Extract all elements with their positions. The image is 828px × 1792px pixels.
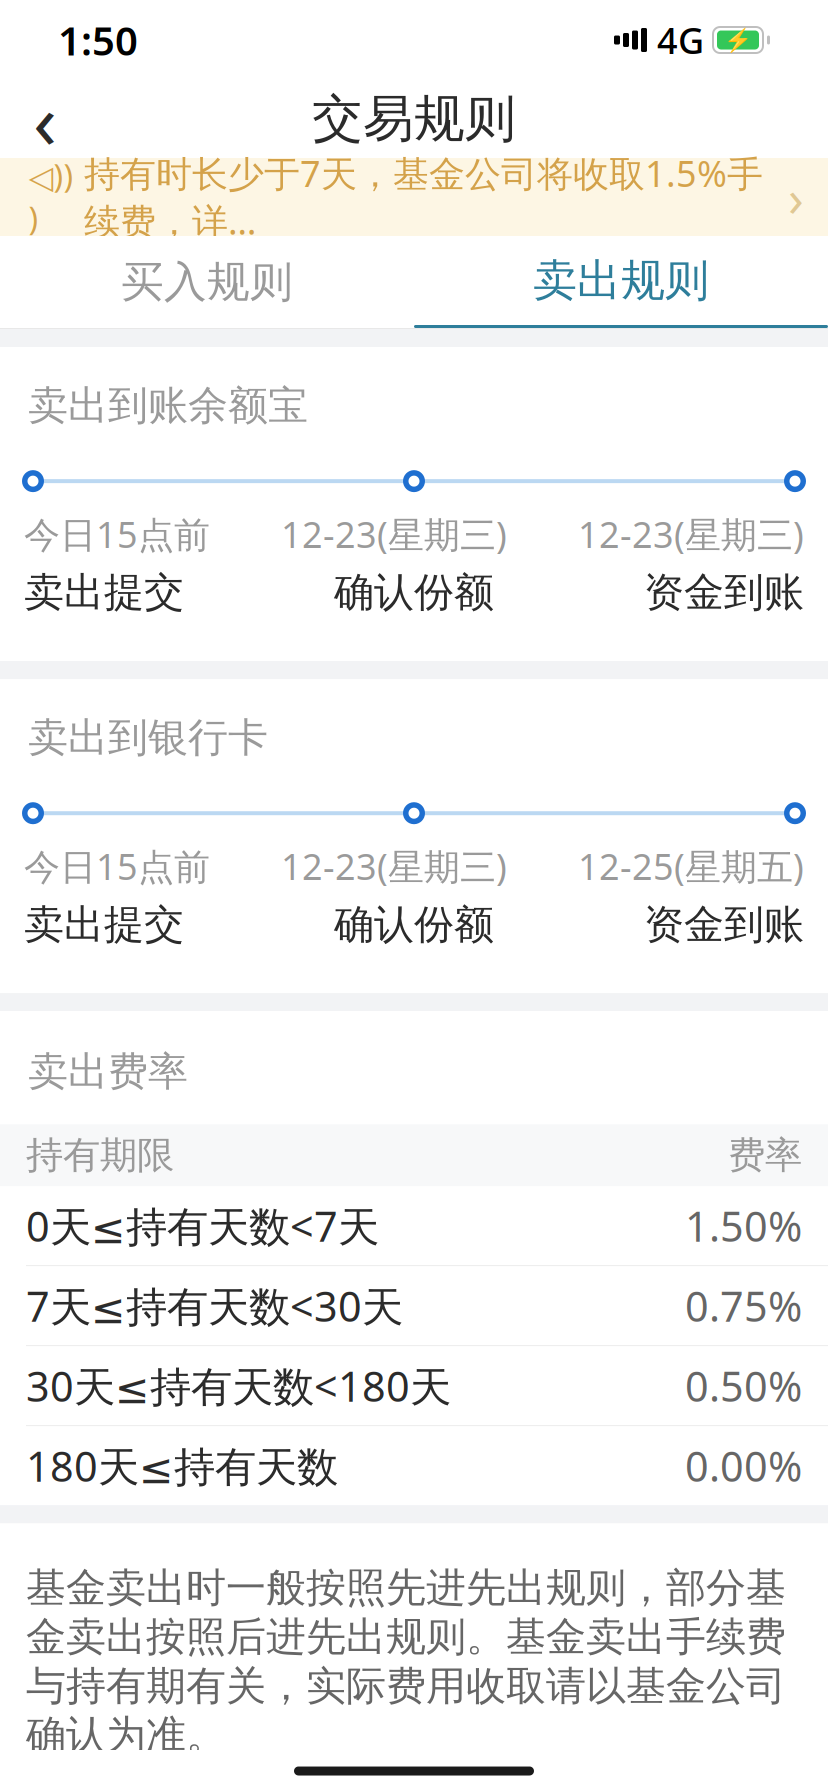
staticText: 30天≤持有天数<180天: [26, 1358, 451, 1413]
staticText: 0.75%: [685, 1278, 802, 1333]
staticText: 持有时长少于7天，基金公司将收取1.5%手续费，详…: [84, 149, 763, 245]
staticText: 卖出提交: [24, 568, 184, 617]
staticText: 今日15点前: [24, 510, 210, 558]
staticText: 0天≤持有天数<7天: [26, 1198, 379, 1253]
staticText: 持有期限: [26, 1132, 174, 1178]
staticText: 7天≤持有天数<30天: [26, 1278, 403, 1333]
staticText: 今日15点前: [24, 842, 210, 890]
staticText: 卖出到银行卡: [28, 713, 268, 762]
staticText: ‹: [33, 68, 57, 170]
staticText: 12-23(星期三): [281, 842, 507, 890]
staticText: ⚡: [724, 27, 752, 53]
staticText: 买入规则: [121, 256, 293, 308]
button[interactable]: 买入规则: [0, 236, 414, 328]
button[interactable]: Back: [0, 82, 90, 156]
staticText: 卖出到账余额宝: [28, 381, 308, 430]
button[interactable]: 卖出规则: [414, 236, 828, 328]
staticText: 资金到账: [644, 900, 804, 949]
staticText: 卖出费率: [28, 1047, 188, 1096]
staticText: 交易规则: [312, 88, 516, 150]
staticText: 确认份额: [334, 900, 494, 949]
staticText: 资金到账: [644, 568, 804, 617]
staticText: 确认份额: [334, 568, 494, 617]
button[interactable]: ◁))): [0, 158, 828, 236]
staticText: 12-23(星期三): [281, 510, 507, 558]
staticText: 卖出规则: [533, 253, 709, 307]
staticText: 1.50%: [685, 1198, 802, 1253]
staticText: 0.00%: [685, 1438, 802, 1493]
staticText: ›: [788, 163, 804, 231]
staticText: ◁))): [28, 154, 73, 239]
staticText: 卖出提交: [24, 900, 184, 949]
staticText: 12-25(星期五): [578, 842, 804, 890]
staticText: 费率: [728, 1132, 802, 1178]
staticText: 4G: [657, 16, 704, 64]
staticText: 0.50%: [685, 1358, 802, 1413]
staticText: 1:50: [58, 13, 138, 66]
staticText: 180天≤持有天数: [26, 1438, 338, 1493]
staticText: 基金卖出时一般按照先进先出规则，部分基金卖出按照后进先出规则。基金卖出手续费与持…: [26, 1563, 786, 1760]
staticText: 12-23(星期三): [578, 510, 804, 558]
